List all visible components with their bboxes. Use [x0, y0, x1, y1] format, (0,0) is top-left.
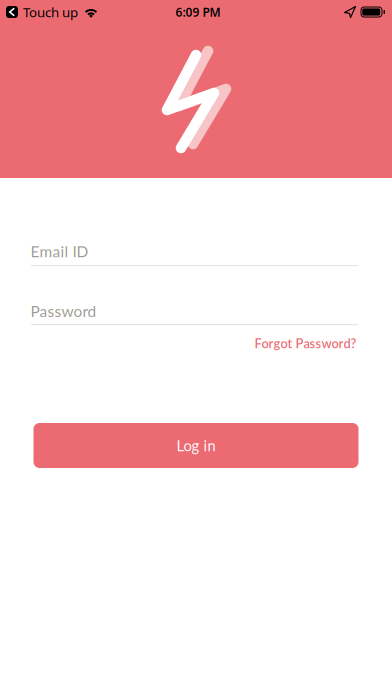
staticText: Email ID: [30, 242, 88, 261]
staticText: Password: [30, 302, 96, 320]
button[interactable]: Log in: [33, 423, 358, 468]
button[interactable]: Forgot Password?: [254, 335, 356, 351]
staticText: Log in: [176, 437, 215, 454]
secureTextField[interactable]: Password: [30, 302, 357, 320]
staticText: Touch up: [23, 3, 78, 21]
staticText: 6:09 PM: [175, 4, 220, 20]
textField[interactable]: Email ID: [30, 242, 357, 261]
staticText: Forgot Password?: [254, 335, 356, 351]
